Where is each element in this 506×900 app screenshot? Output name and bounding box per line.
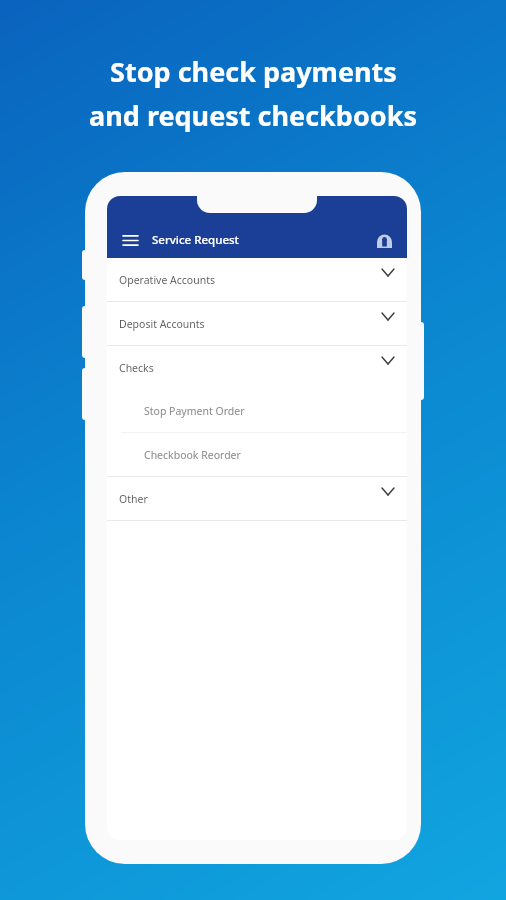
button[interactable]: Checks — [107, 346, 407, 389]
staticText: Service Request — [152, 232, 239, 248]
staticText: Deposit Accounts — [119, 317, 205, 331]
staticText: Checkbook Reorder — [144, 448, 241, 462]
staticText: and request checkbooks — [89, 97, 417, 134]
staticText: Checks — [119, 361, 154, 375]
button[interactable]: Home — [371, 227, 397, 253]
button[interactable]: Stop Payment Order — [107, 389, 407, 432]
button[interactable]: Deposit Accounts — [107, 302, 407, 345]
staticText: Other — [119, 492, 148, 506]
staticText: Stop check payments — [110, 53, 397, 90]
staticText: Stop Payment Order — [144, 404, 245, 418]
button[interactable]: Other — [107, 477, 407, 520]
staticText: Operative Accounts — [119, 273, 216, 287]
button[interactable]: Operative Accounts — [107, 258, 407, 301]
button[interactable]: Open navigation menu — [117, 227, 143, 253]
button[interactable]: Checkbook Reorder — [107, 433, 407, 476]
